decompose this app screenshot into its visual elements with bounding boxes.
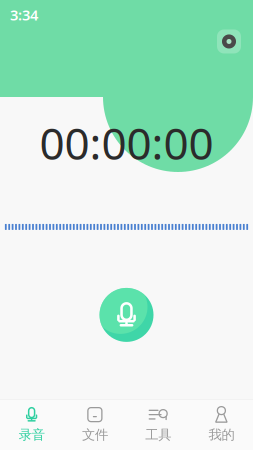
button[interactable]: Settings <box>217 29 241 53</box>
button[interactable]: Record <box>99 288 153 342</box>
staticText: 00:00:00 <box>39 113 213 172</box>
staticText: 我的 <box>208 427 234 443</box>
button[interactable]: 文件 <box>63 400 126 450</box>
staticText: 3:34 <box>10 5 38 24</box>
staticText: 文件 <box>82 427 108 443</box>
staticText: 录音 <box>19 427 45 443</box>
button[interactable]: 我的 <box>190 400 253 450</box>
button[interactable]: 工具 <box>126 400 190 450</box>
button[interactable]: 录音 <box>0 400 63 450</box>
staticText: 工具 <box>145 427 171 443</box>
